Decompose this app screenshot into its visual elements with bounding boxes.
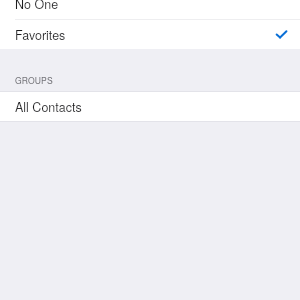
staticText: All Contacts <box>15 98 82 116</box>
button[interactable]: No One <box>0 0 300 19</box>
button[interactable]: All Contacts <box>0 92 300 121</box>
other: Selected <box>276 30 287 39</box>
staticText: GROUPS <box>15 74 53 86</box>
button[interactable]: Favorites <box>0 19 300 49</box>
staticText: No One <box>15 0 59 13</box>
staticText: Favorites <box>15 26 66 44</box>
